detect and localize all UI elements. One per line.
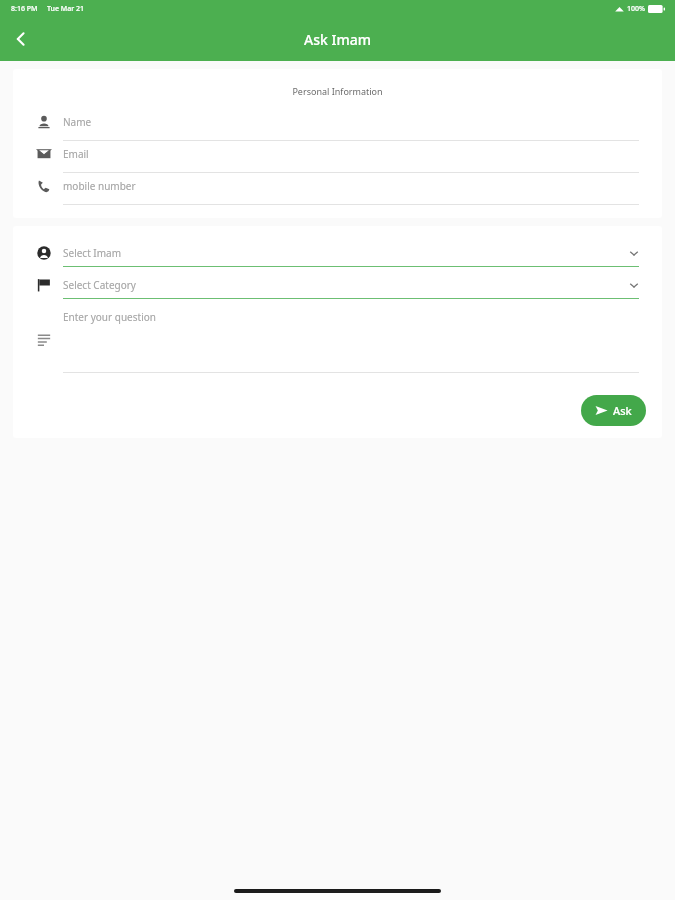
button[interactable]: mobile number xyxy=(13,174,662,206)
staticText: mobile number xyxy=(63,179,136,193)
staticText: 100% xyxy=(627,4,645,14)
staticText: Name xyxy=(63,115,92,129)
staticText: Select Imam xyxy=(63,246,629,260)
button[interactable]: Select Imam xyxy=(13,244,662,267)
staticText: Select Category xyxy=(63,278,629,292)
button[interactable]: Enter your question xyxy=(13,310,662,395)
button[interactable]: Name xyxy=(13,110,662,142)
staticText: 8:16 PM xyxy=(11,4,38,14)
staticText: Ask xyxy=(613,403,632,418)
staticText: Enter your question xyxy=(63,310,156,324)
button[interactable]: Ask xyxy=(581,395,646,426)
staticText: Email xyxy=(63,147,89,161)
staticText: Personal Information xyxy=(13,85,662,97)
staticText: Ask Imam xyxy=(304,30,371,49)
button[interactable]: Select Category xyxy=(13,276,662,299)
staticText: Tue Mar 21 xyxy=(47,4,85,14)
button[interactable]: Email xyxy=(13,142,662,174)
button[interactable]: Back xyxy=(0,18,42,60)
